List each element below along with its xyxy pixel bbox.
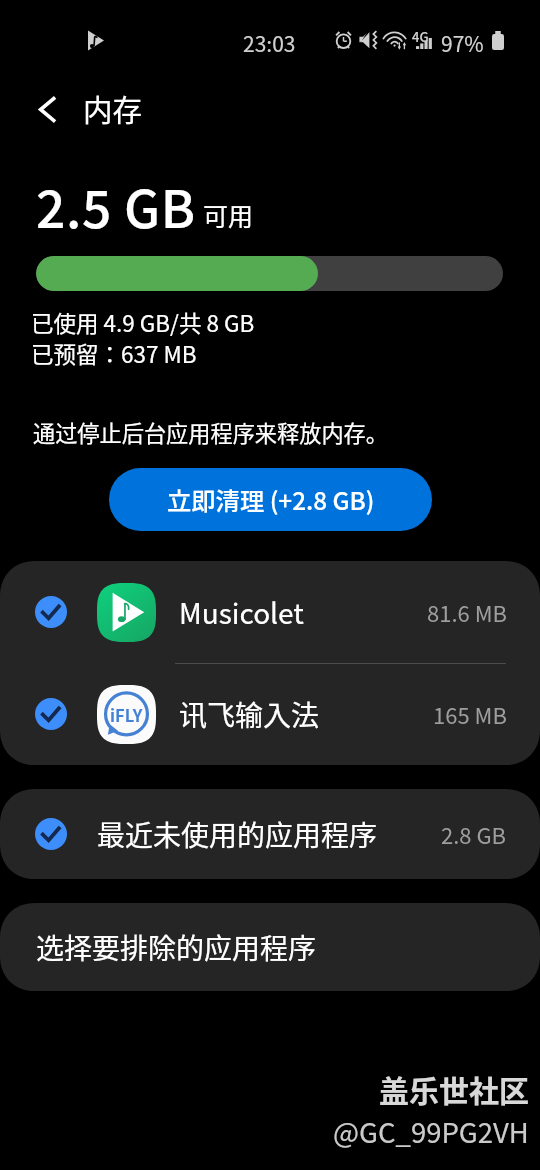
staticText: 立即清理 (+2.8 GB) (167, 482, 375, 517)
staticText: 选择要排除的应用程序 (36, 927, 317, 968)
staticText: 97% (441, 28, 484, 58)
staticText: 内存 (83, 87, 143, 130)
staticText: 81.6 MB (427, 596, 507, 628)
button[interactable]: Back (27, 89, 67, 129)
staticText: 已预留：637 MB (31, 337, 197, 370)
staticText: Musicolet (179, 592, 304, 633)
staticText: 已使用 4.9 GB/共 8 GB (31, 306, 255, 339)
staticText: 165 MB (433, 698, 507, 730)
staticText: 通过停止后台应用程序来释放内存。 (33, 416, 388, 448)
staticText: 2.5 GB (36, 168, 196, 243)
staticText: iFLY (110, 703, 143, 727)
staticText: 23:03 (243, 28, 296, 58)
staticText: 2.8 GB (441, 818, 507, 850)
button[interactable]: iFLY (0, 663, 540, 765)
staticText: 盖乐世社区 (379, 1067, 529, 1110)
staticText: 4G (412, 27, 429, 46)
staticText: 最近未使用的应用程序 (97, 814, 378, 855)
staticText: @GC_99PG2VH (333, 1111, 529, 1151)
button[interactable]: Musicolet (0, 561, 540, 663)
button[interactable]: 立即清理 (+2.8 GB) (109, 468, 432, 531)
staticText: 可用 (203, 197, 254, 233)
staticText: 讯飞输入法 (179, 694, 320, 735)
button[interactable]: 选择要排除的应用程序 (0, 903, 540, 991)
button[interactable]: 最近未使用的应用程序 (0, 789, 540, 879)
